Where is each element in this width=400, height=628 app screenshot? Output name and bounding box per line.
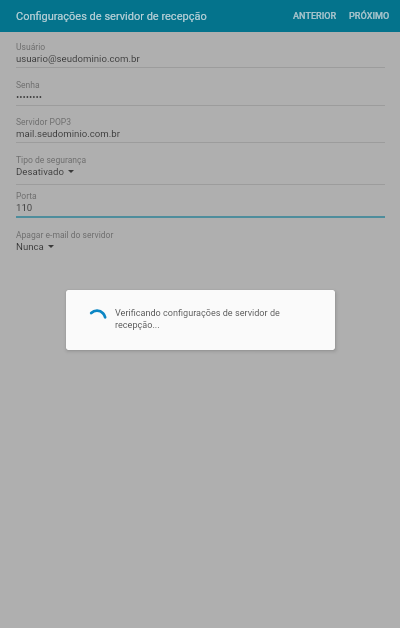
staticText: •••••••• xyxy=(16,91,43,102)
staticText: Tipo de segurança xyxy=(16,155,87,165)
staticText: Nunca xyxy=(16,241,44,252)
staticText: PRÓXIMO xyxy=(349,11,390,22)
staticText: Apagar e-mail do servidor xyxy=(16,230,114,240)
button[interactable]: Servidor POP3 xyxy=(0,117,400,145)
button[interactable]: Carregando xyxy=(66,290,335,350)
button[interactable]: PRÓXIMO xyxy=(343,4,400,29)
staticText: Servidor POP3 xyxy=(16,117,71,127)
staticText: Verificando configurações de servidor de… xyxy=(115,308,283,330)
button[interactable]: Tipo de segurança xyxy=(0,155,400,183)
other: Carregando xyxy=(87,309,107,329)
staticText: usuario@seudominio.com.br xyxy=(16,53,140,64)
button[interactable]: Porta xyxy=(0,191,400,219)
button[interactable]: Senha xyxy=(0,80,400,108)
staticText: Usuário xyxy=(16,42,46,52)
staticText: Configurações de servidor de recepção xyxy=(16,10,207,23)
staticText: Porta xyxy=(16,191,37,201)
staticText: mail.seudominio.com.br xyxy=(16,128,120,139)
button[interactable]: Apagar e-mail do servidor xyxy=(0,230,400,258)
staticText: Senha xyxy=(16,80,40,90)
button[interactable]: Usuário xyxy=(0,42,400,70)
staticText: 110 xyxy=(16,202,33,213)
staticText: ANTERIOR xyxy=(293,11,337,22)
button[interactable]: ANTERIOR xyxy=(287,4,343,29)
staticText: Desativado xyxy=(16,166,64,177)
